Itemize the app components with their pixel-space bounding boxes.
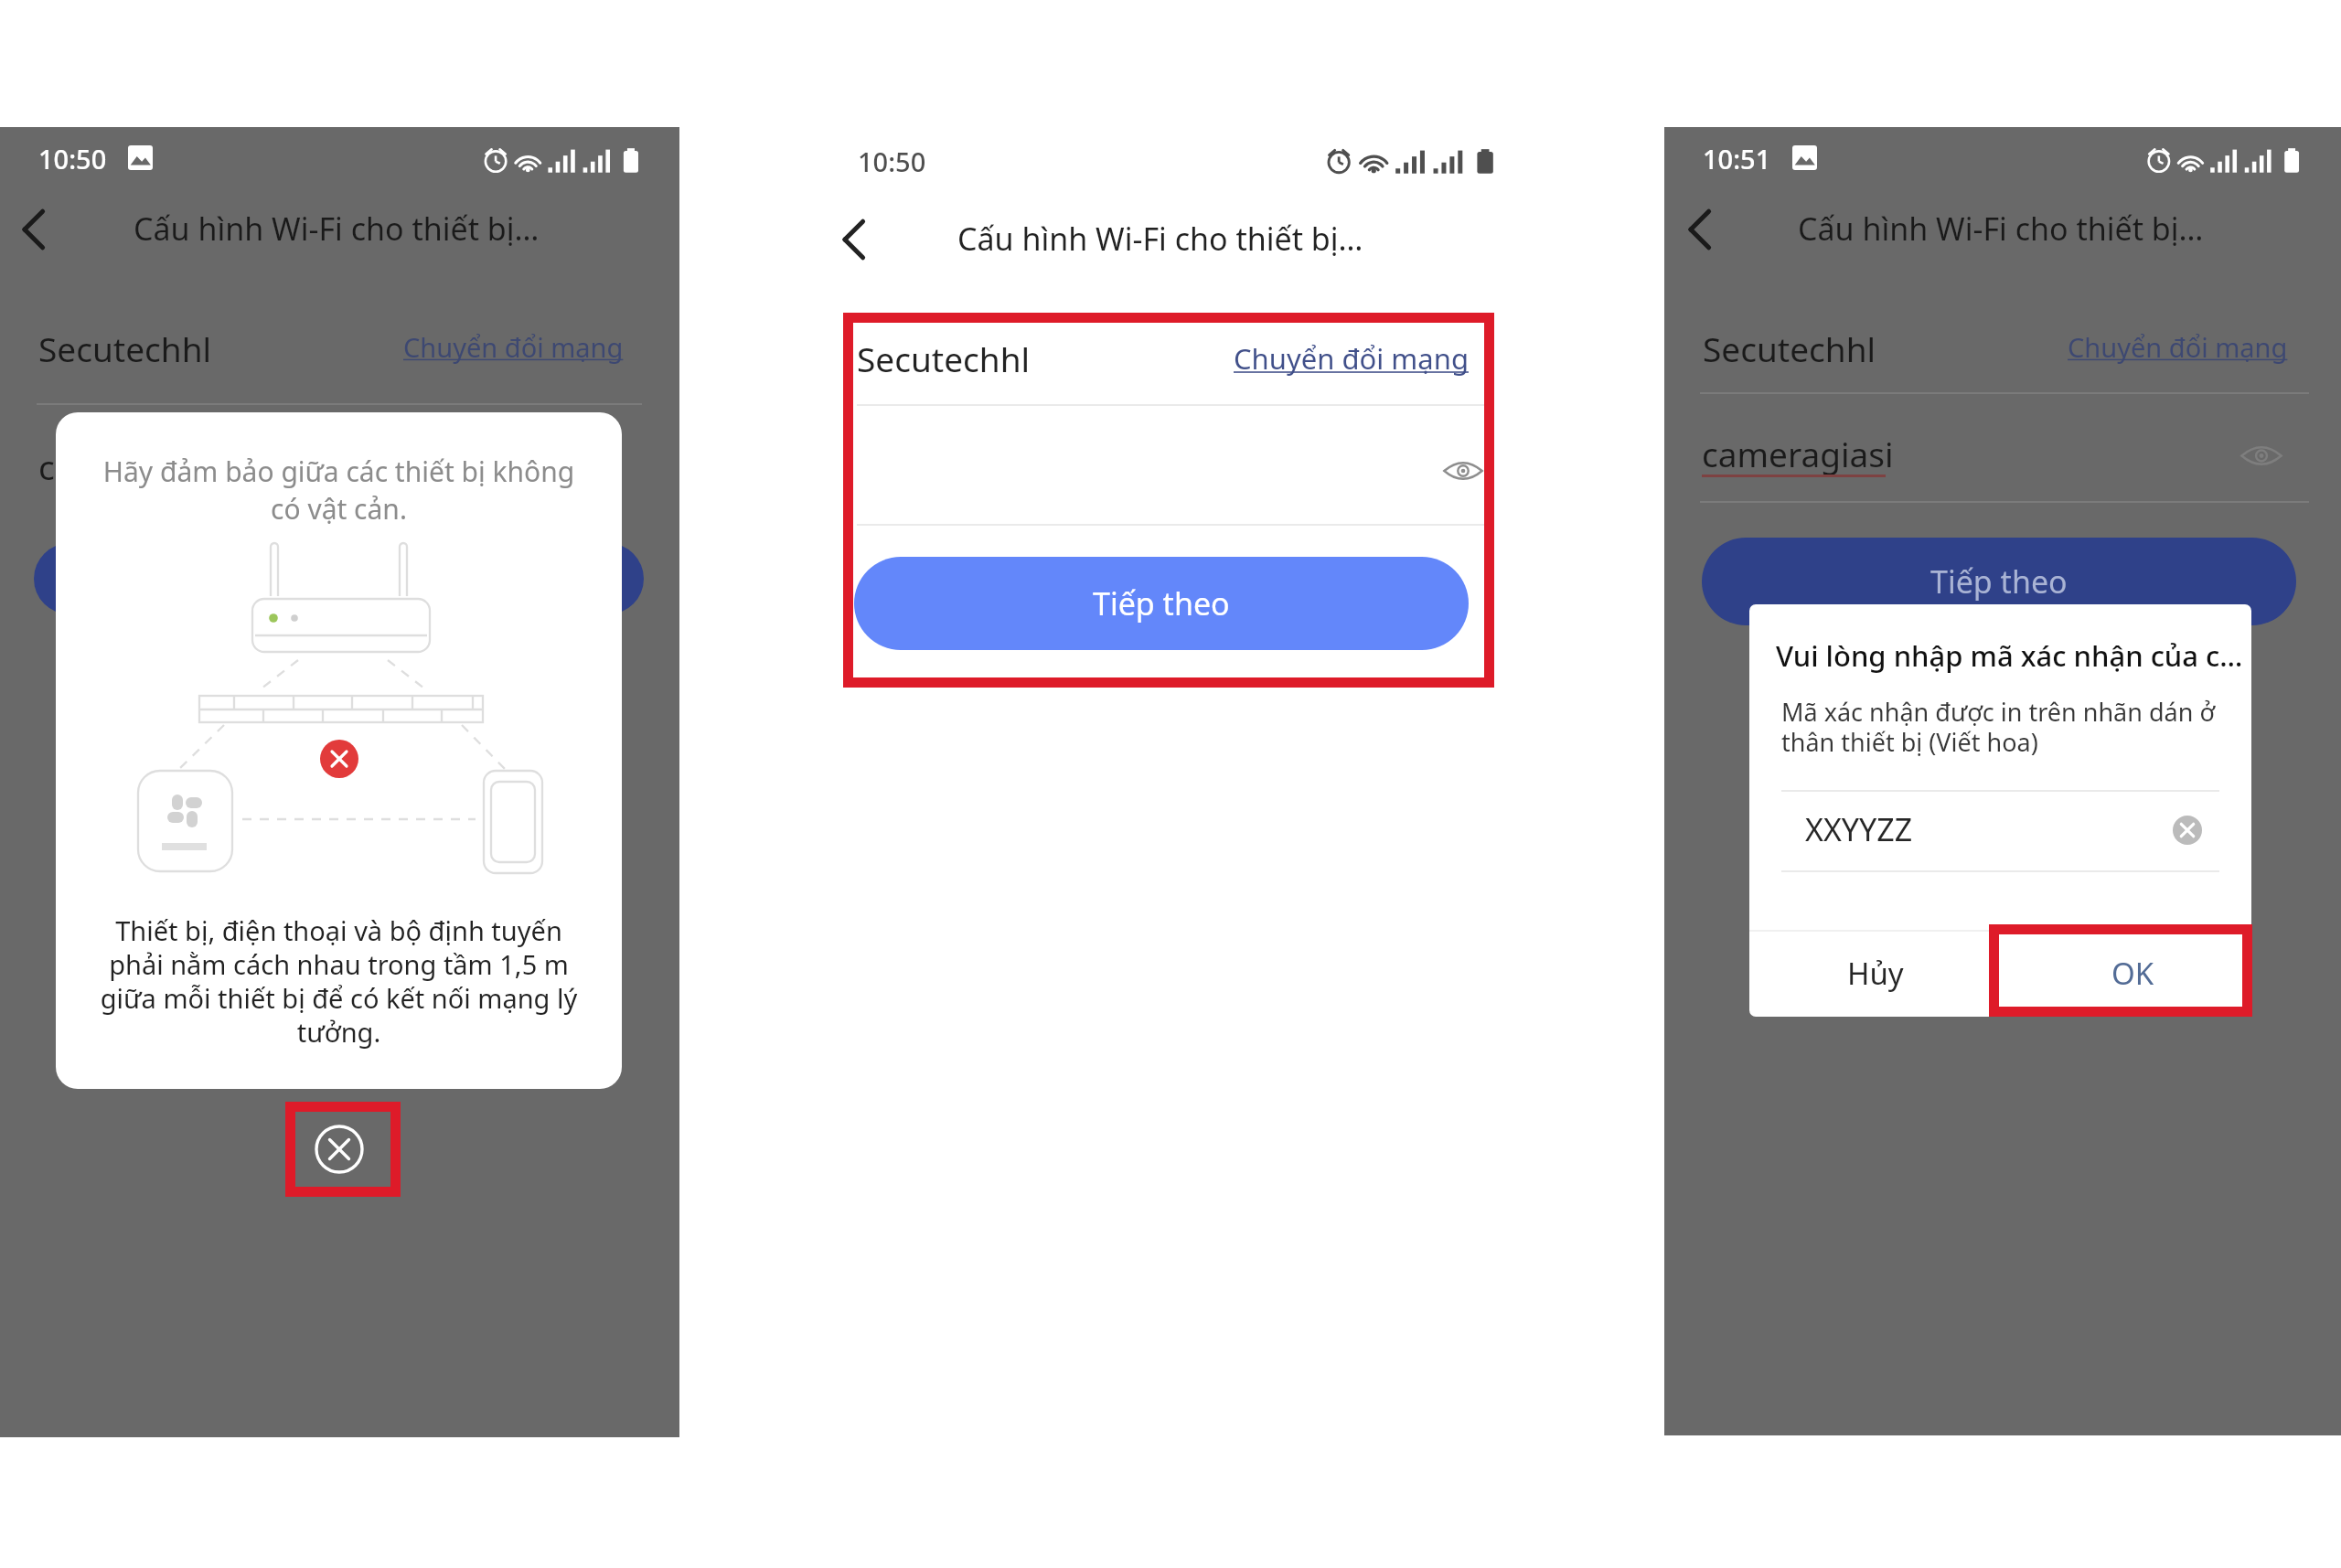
staticText: Mã xác nhận được in trên nhãn dán ở thân… (1781, 695, 2216, 759)
button[interactable]: Hủy (1793, 930, 1958, 1017)
staticText: Hãy đảm bảo giữa các thiết bị không có v… (56, 453, 622, 528)
staticText: 10:50 (38, 141, 107, 176)
button[interactable]: Back (1662, 193, 1736, 266)
button[interactable]: Clear text (2169, 812, 2206, 848)
button[interactable]: Chuyển đổi mạng (1234, 339, 1469, 378)
button[interactable]: Show password (1438, 447, 1489, 495)
staticText: Secutechhl (38, 325, 212, 371)
button[interactable] (34, 543, 644, 614)
button[interactable]: Tiếp theo (1702, 538, 2296, 625)
staticText: Cấu hình Wi-Fi cho thiết bị… (1798, 208, 2204, 250)
staticText: Tiếp theo (1093, 582, 1230, 624)
button[interactable]: Close dialog (312, 1122, 367, 1177)
staticText: c (38, 443, 55, 489)
staticText: Chuyển đổi mạng (403, 329, 624, 365)
staticText: 10:51 (1703, 141, 1771, 176)
button[interactable]: Chuyển đổi mạng (403, 329, 624, 365)
button[interactable]: Chuyển đổi mạng (2068, 329, 2288, 365)
staticText: Vui lòng nhập mã xác nhận của c… (1776, 636, 2243, 675)
button[interactable]: Back (0, 193, 69, 266)
button[interactable]: Back (817, 203, 890, 276)
button[interactable]: OK (2050, 930, 2215, 1017)
staticText: Cấu hình Wi-Fi cho thiết bị… (134, 208, 540, 250)
staticText: cameragiasi (1702, 431, 1894, 476)
staticText: Cấu hình Wi-Fi cho thiết bị… (957, 218, 1363, 260)
staticText: Tiếp theo (1930, 560, 2068, 603)
staticText: Thiết bị, điện thoại và bộ định tuyến ph… (56, 912, 622, 1051)
staticText: OK (2111, 953, 2154, 994)
staticText: Chuyển đổi mạng (1234, 339, 1469, 378)
staticText: Chuyển đổi mạng (2068, 329, 2288, 365)
staticText: XXYYZZ (1805, 808, 1913, 850)
staticText: Secutechhl (857, 336, 1031, 381)
staticText: Hủy (1847, 953, 1904, 994)
button[interactable]: Tiếp theo (854, 557, 1469, 650)
staticText: Secutechhl (1703, 325, 1876, 371)
staticText: 10:50 (858, 144, 926, 179)
button[interactable]: Show password (2236, 432, 2287, 479)
